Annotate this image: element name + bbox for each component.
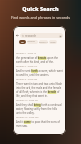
staticText: And it came to pass that the sons of men… bbox=[16, 120, 63, 128]
button[interactable]: Matches 174 bbox=[27, 40, 38, 44]
button[interactable]: All bbox=[19, 40, 26, 44]
staticText: GENESIS 1 · PAGE 12 bbox=[16, 52, 36, 55]
staticText: GENESIS 12 · PAGE 341 bbox=[16, 99, 39, 102]
button[interactable]: research bbox=[20, 33, 63, 38]
staticText: GENESIS 15 · PAGE 402 bbox=[16, 116, 39, 119]
staticText: Notes bbox=[50, 41, 56, 44]
staticText: Matches 174 bbox=[27, 40, 38, 44]
staticText: GENESIS 7 · PAGE 214 bbox=[16, 65, 38, 68]
button[interactable]: Back bbox=[15, 33, 20, 38]
staticText: And they shall bring forth a continual w… bbox=[16, 103, 63, 115]
staticText: All bbox=[21, 41, 24, 44]
button[interactable]: Books 12 bbox=[39, 40, 48, 44]
staticText: Find words and phrases in seconds bbox=[11, 15, 70, 20]
staticText: GENESIS 9 · PAGE 286 bbox=[16, 78, 38, 81]
staticText: There went in two and two unto Noah into… bbox=[16, 82, 63, 98]
button[interactable]: Notes bbox=[49, 40, 57, 44]
staticText: Books 12 bbox=[39, 41, 48, 44]
staticText: the generation of beasts upon the earth … bbox=[16, 56, 63, 64]
staticText: Quick Search bbox=[22, 5, 59, 12]
staticText: And he sent forth a raven, which went to… bbox=[16, 69, 63, 77]
staticText: research bbox=[25, 34, 37, 38]
